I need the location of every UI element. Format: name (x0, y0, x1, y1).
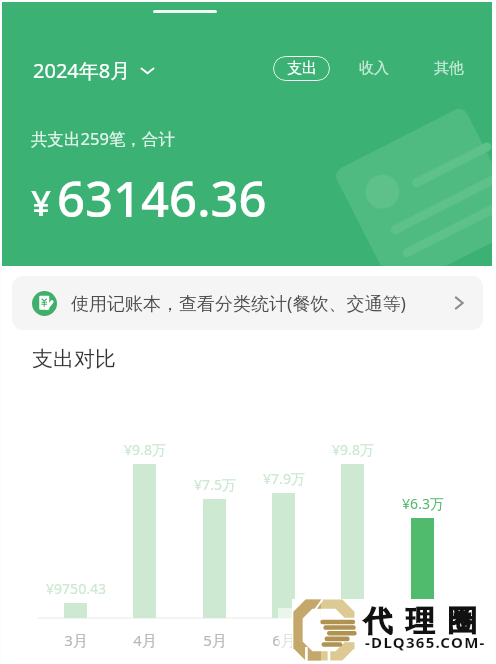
staticText: 7月 (341, 630, 365, 650)
staticText: 63146.36 (57, 165, 267, 232)
staticText: ¥9750.43 (46, 579, 106, 598)
button[interactable]: 使用记账本，查看分类统计(餐饮、交通等) (12, 276, 483, 330)
staticText: ¥9.8万 (124, 440, 166, 459)
staticText: 5月 (203, 630, 227, 650)
other: Open ledger statistics (451, 295, 467, 311)
button[interactable]: 2024年8月 (31, 53, 159, 88)
staticText: 2024年8月 (33, 57, 131, 84)
staticText: 支出 (287, 59, 317, 78)
staticText: 其他 (434, 59, 464, 78)
button[interactable]: 支出 (273, 56, 330, 81)
staticText: 共支出259笔，合计 (31, 127, 175, 150)
button[interactable]: 收入 (351, 53, 397, 84)
staticText: ¥7.9万 (263, 469, 305, 488)
staticText: 使用记账本，查看分类统计(餐饮、交通等) (71, 291, 406, 316)
staticText: ¥ (31, 179, 52, 227)
staticText: 代理圈 (357, 603, 483, 640)
button[interactable]: 其他 (426, 53, 472, 84)
staticText: 3月 (64, 630, 88, 650)
staticText: 4月 (133, 630, 157, 650)
staticText: 8月 (411, 630, 435, 650)
staticText: ¥7.5万 (194, 475, 236, 494)
staticText: 支出对比 (32, 346, 116, 372)
staticText: ¥9.8万 (332, 440, 374, 459)
staticText: 6月 (272, 630, 296, 650)
staticText: ¥6.3万 (402, 494, 444, 513)
staticText: -DLQ365.COM- (365, 632, 486, 652)
staticText: 收入 (359, 59, 389, 78)
